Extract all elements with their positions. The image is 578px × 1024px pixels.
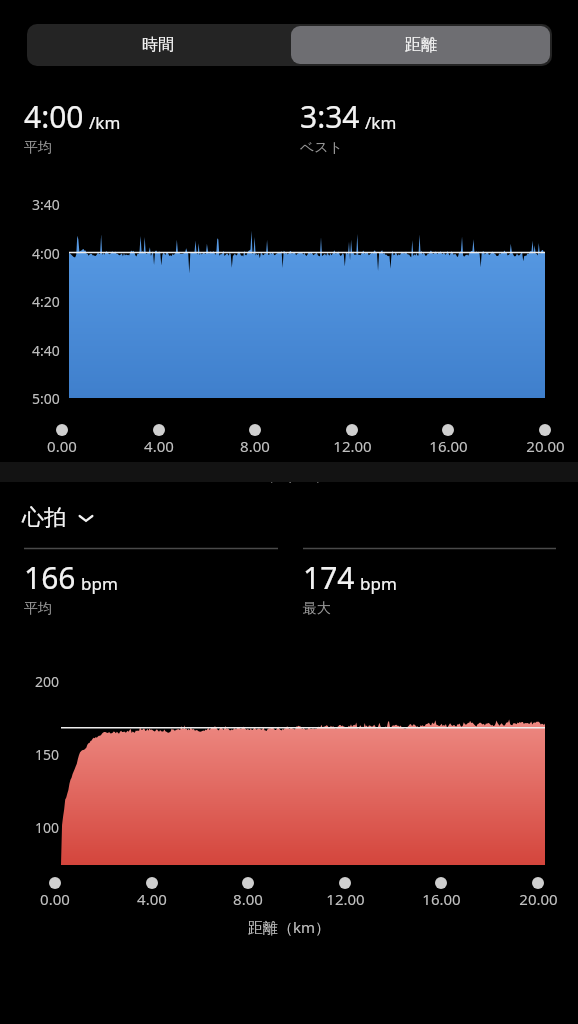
staticText: bpm [360,572,397,595]
other: Expand heart rate [76,508,96,528]
staticText: 4:00 [32,244,60,263]
staticText: 距離（km） [248,917,331,937]
button[interactable]: 心拍 [22,504,96,532]
staticText: 4:00 [24,96,84,137]
staticText: /km [89,111,121,134]
staticText: 5:00 [32,389,60,408]
staticText: 12.00 [326,889,365,909]
staticText: 平均 [24,139,52,157]
staticText: 3:34 [300,96,360,137]
staticText: 時間 [142,35,174,55]
staticText: 距離（km） [248,464,331,484]
staticText: 166 [24,557,76,598]
staticText: 20.00 [526,436,565,456]
staticText: 4:20 [32,292,60,311]
staticText: 4.00 [137,889,167,909]
staticText: 4:40 [32,341,60,360]
staticText: 12.00 [333,436,372,456]
staticText: 0.00 [40,889,70,909]
button[interactable]: 時間 [27,24,289,66]
staticText: 200 [35,672,60,691]
staticText: 100 [35,818,60,837]
staticText: 8.00 [240,436,270,456]
staticText: 8.00 [233,889,263,909]
staticText: 最大 [303,600,331,618]
staticText: 距離 [405,35,437,55]
button[interactable]: 距離 [291,26,550,64]
staticText: /km [365,111,397,134]
staticText: 4.00 [144,436,174,456]
staticText: 3:40 [32,195,60,214]
staticText: 心拍 [22,504,66,532]
staticText: 0.00 [47,436,77,456]
staticText: 16.00 [429,436,468,456]
staticText: bpm [81,572,118,595]
staticText: 150 [35,745,60,764]
staticText: 174 [303,557,355,598]
staticText: 20.00 [519,889,558,909]
staticText: 平均 [24,600,52,618]
staticText: 16.00 [422,889,461,909]
staticText: ベスト [300,139,343,157]
